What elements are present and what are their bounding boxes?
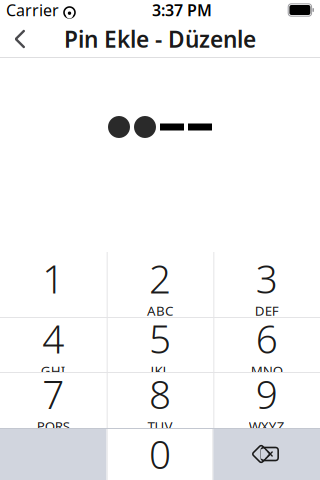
staticText: 8 — [149, 368, 171, 420]
staticText: 4 — [42, 313, 64, 364]
staticText: 6 — [256, 313, 278, 364]
button[interactable]: 2 — [107, 252, 213, 317]
button[interactable]: 0 — [107, 428, 213, 480]
staticText: PQRS — [37, 417, 70, 435]
staticText: 9 — [256, 368, 278, 420]
staticText: 3 — [256, 253, 278, 304]
button[interactable]: 5 — [107, 317, 213, 372]
staticText: 5 — [149, 313, 171, 364]
staticText: DEF — [255, 302, 279, 319]
button[interactable]: 7 — [0, 372, 107, 428]
staticText: 0 — [149, 428, 171, 480]
button[interactable]: Back — [0, 20, 40, 58]
staticText: WXYZ — [249, 417, 285, 435]
staticText: GHI — [41, 362, 66, 379]
button[interactable]: 4 — [0, 317, 107, 372]
button[interactable]: 8 — [107, 372, 213, 428]
staticText: ABC — [147, 302, 173, 319]
button[interactable]: 6 — [213, 317, 320, 372]
button[interactable]: Delete — [213, 428, 320, 480]
button[interactable]: 9 — [213, 372, 320, 428]
button[interactable]: 3 — [213, 252, 320, 317]
staticText: JKL — [150, 362, 169, 379]
staticText: 7 — [42, 368, 64, 420]
staticText: Carrier — [6, 0, 59, 21]
staticText: MNO — [251, 362, 283, 379]
staticText: 2 — [149, 253, 171, 304]
staticText: TUV — [147, 417, 172, 435]
staticText: 1 — [42, 253, 64, 304]
staticText: Pin Ekle - Düzenle — [64, 24, 256, 54]
button[interactable]: 1 — [0, 252, 107, 317]
staticText: 3:37 PM — [152, 0, 212, 21]
